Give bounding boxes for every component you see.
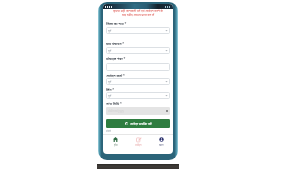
staticText: आवेदन कर्ता * <box>106 73 125 77</box>
staticText: लिंग * <box>106 87 115 91</box>
staticText: चुनें <box>108 49 112 53</box>
staticText: चुनें <box>108 80 112 84</box>
staticText: ग्राम पंचायत * <box>106 41 125 45</box>
staticText: आवेदन <box>135 143 142 146</box>
staticText: चुनें <box>108 94 112 98</box>
button[interactable]: चुनें <box>106 92 170 99</box>
staticText: खाता <box>159 143 164 146</box>
button[interactable]: चुनें <box>106 47 170 54</box>
button[interactable] <box>106 63 170 71</box>
button[interactable]: चुनें <box>106 78 170 85</box>
button[interactable]: आवेदन सबमिट करें <box>106 119 170 128</box>
button[interactable]: चुनें <box>106 27 170 34</box>
button[interactable]: खाता <box>157 135 166 148</box>
staticText: dd/mm/yyyy <box>108 109 124 113</box>
staticText: जिला का नाम * <box>106 21 127 25</box>
staticText: जन्म तिथि * <box>106 101 122 105</box>
staticText: आवेदन सबमिट करें <box>130 122 152 126</box>
staticText: कृपया सही जानकारी भरें एवं आवेदन करने के… <box>106 9 170 17</box>
staticText: चुनें <box>108 29 112 33</box>
button[interactable]: dd/mm/yyyy <box>106 107 170 115</box>
button[interactable]: आवेदन <box>133 135 144 148</box>
button[interactable]: होम <box>111 135 120 148</box>
staticText: होम <box>114 143 118 146</box>
staticText: मोबाइल नंबर * <box>106 56 126 60</box>
staticText: संपर्क <box>106 129 112 132</box>
